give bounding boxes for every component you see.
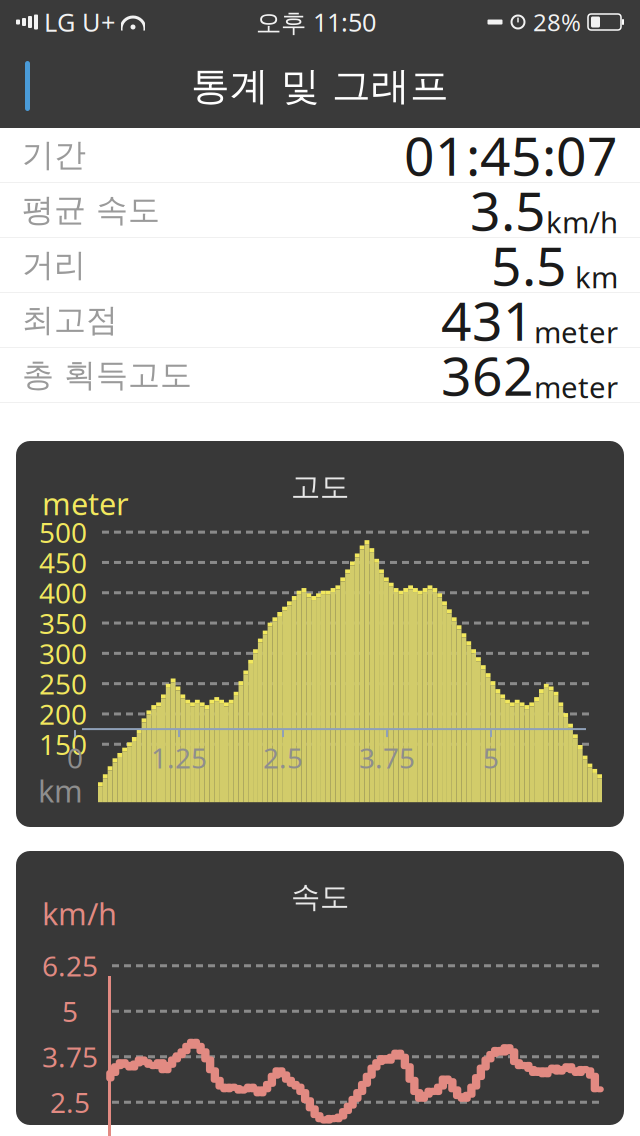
- staticText: 3.75: [359, 739, 415, 776]
- staticText: meter: [534, 312, 618, 351]
- staticText: 5: [483, 739, 499, 776]
- staticText: 2.5: [50, 1084, 90, 1121]
- staticText: km/h: [42, 893, 117, 934]
- staticText: 300: [39, 635, 87, 672]
- staticText: LG U+: [44, 5, 115, 39]
- staticText: km: [38, 770, 83, 811]
- staticText: meter: [42, 483, 129, 524]
- staticText: 고도: [291, 469, 349, 505]
- staticText: 기간: [22, 135, 86, 175]
- staticText: 5.5: [491, 230, 567, 300]
- staticText: 01:45:07: [404, 120, 618, 190]
- staticText: 28%: [533, 6, 581, 38]
- staticText: 2.5: [263, 739, 303, 776]
- staticText: 500: [39, 514, 87, 551]
- staticText: 거리: [22, 245, 86, 285]
- staticText: 3.5: [470, 175, 546, 245]
- staticText: 200: [39, 695, 87, 733]
- button[interactable]: Back: [0, 44, 70, 128]
- staticText: 0: [67, 739, 83, 776]
- staticText: 3.75: [42, 1038, 98, 1075]
- staticText: meter: [534, 367, 618, 406]
- staticText: 400: [39, 574, 87, 611]
- staticText: 350: [39, 604, 87, 642]
- staticText: 통계 및 그래프: [191, 62, 449, 110]
- staticText: 150: [39, 726, 87, 763]
- staticText: 362: [441, 340, 534, 410]
- staticText: 속도: [291, 879, 349, 915]
- staticText: km/h: [546, 202, 618, 241]
- staticText: 250: [39, 665, 87, 702]
- staticText: 오후 11:50: [256, 5, 376, 39]
- staticText: 431: [441, 285, 534, 355]
- staticText: 총 획득고도: [22, 355, 192, 395]
- staticText: 1.25: [151, 739, 207, 776]
- staticText: 최고점: [22, 300, 118, 340]
- staticText: 6.25: [42, 947, 98, 984]
- staticText: 평균 속도: [22, 190, 160, 230]
- staticText: km: [567, 257, 618, 296]
- staticText: 5: [62, 993, 78, 1030]
- staticText: 450: [39, 544, 87, 581]
